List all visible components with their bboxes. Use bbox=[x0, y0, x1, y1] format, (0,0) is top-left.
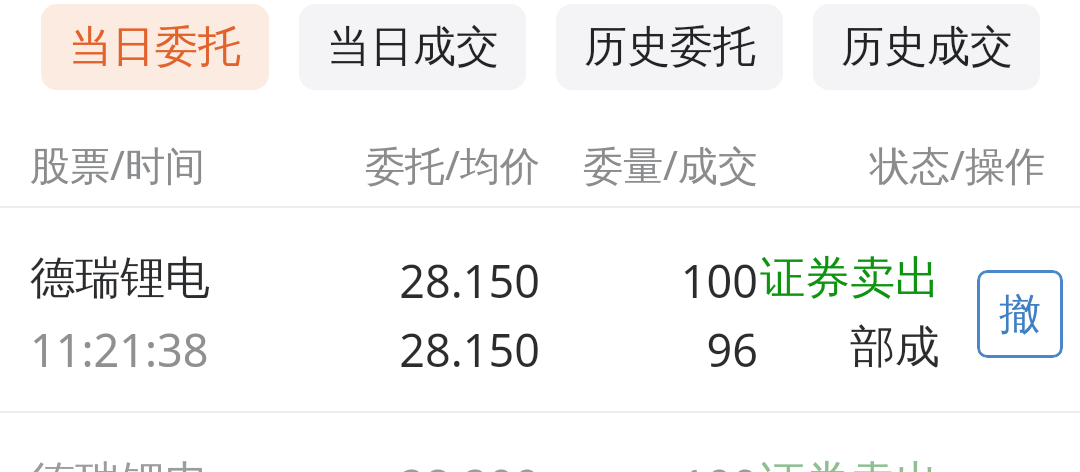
staticText: 100 bbox=[540, 250, 758, 311]
staticText: 证券卖出 bbox=[758, 455, 940, 472]
button[interactable]: 德瑞锂电 bbox=[0, 208, 1080, 411]
staticText: 当日委托 bbox=[69, 20, 241, 74]
staticText: 证券卖出 bbox=[758, 250, 940, 307]
staticText: 100 bbox=[540, 455, 758, 472]
button[interactable]: 历史成交 bbox=[813, 4, 1040, 90]
staticText: 历史成交 bbox=[841, 20, 1013, 74]
staticText: 委托/均价 bbox=[290, 137, 540, 192]
button[interactable]: 撤单 bbox=[977, 270, 1063, 358]
staticText: 股票/时间 bbox=[30, 137, 290, 192]
button[interactable]: 历史委托 bbox=[556, 4, 783, 90]
button[interactable]: 德瑞锂电 bbox=[0, 413, 1080, 472]
staticText: 28.200 bbox=[290, 455, 540, 472]
staticText: 历史委托 bbox=[584, 20, 756, 74]
staticText: 11:21:38 bbox=[30, 319, 290, 380]
staticText: 撤 bbox=[999, 288, 1041, 341]
button[interactable]: 当日成交 bbox=[299, 4, 526, 90]
staticText: 28.150 bbox=[290, 250, 540, 311]
staticText: 委量/成交 bbox=[540, 137, 758, 192]
staticText: 德瑞锂电 bbox=[30, 250, 290, 307]
staticText: 德瑞锂电 bbox=[30, 455, 290, 472]
staticText: 28.150 bbox=[290, 319, 540, 380]
staticText: 当日成交 bbox=[327, 20, 499, 74]
staticText: 状态/操作 bbox=[758, 137, 1045, 192]
staticText: 部成 bbox=[758, 319, 940, 376]
button[interactable]: 当日委托 bbox=[41, 4, 269, 90]
staticText: 96 bbox=[540, 319, 758, 380]
